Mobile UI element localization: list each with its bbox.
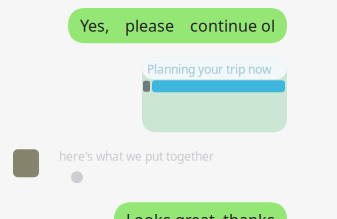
- button[interactable]: Planning your trip now: [142, 57, 287, 132]
- staticText: Looks great, thanks: [126, 209, 275, 219]
- staticText: here's what we put together: [59, 148, 214, 164]
- button[interactable]: Yes, please continue ol: [68, 8, 287, 43]
- staticText: Yes, please continue ol: [80, 15, 275, 36]
- staticText: Planning your trip now: [147, 61, 271, 77]
- button[interactable]: Looks great, thanks: [114, 202, 287, 219]
